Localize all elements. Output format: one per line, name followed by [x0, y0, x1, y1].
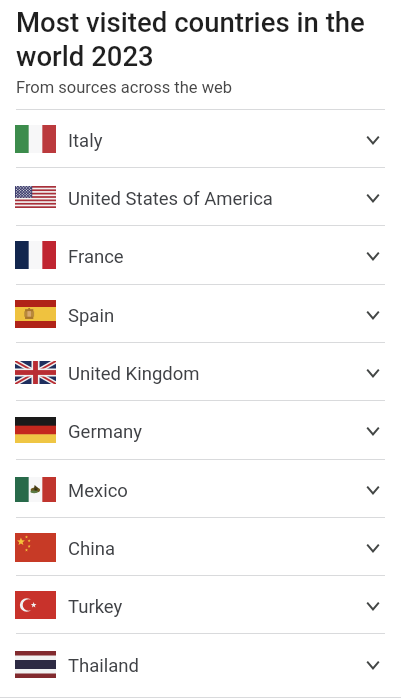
- staticText: Italy: [68, 130, 103, 152]
- button[interactable]: Turkey: [0, 576, 401, 634]
- staticText: Mexico: [68, 480, 128, 502]
- staticText: Thailand: [68, 655, 140, 677]
- staticText: France: [68, 246, 124, 268]
- button[interactable]: United States of America: [0, 168, 401, 226]
- button[interactable]: Thailand: [0, 635, 401, 693]
- button[interactable]: Italy: [0, 110, 401, 168]
- staticText: United Kingdom: [68, 363, 200, 385]
- staticText: Most visited countries in the world 2023: [16, 6, 368, 73]
- staticText: Spain: [68, 305, 115, 327]
- staticText: From sources across the web: [16, 78, 233, 97]
- staticText: Turkey: [68, 596, 123, 618]
- staticText: China: [68, 538, 116, 560]
- button[interactable]: Germany: [0, 401, 401, 459]
- button[interactable]: United Kingdom: [0, 343, 401, 401]
- button[interactable]: Mexico: [0, 460, 401, 518]
- staticText: Germany: [68, 421, 142, 443]
- staticText: United States of America: [68, 188, 273, 210]
- button[interactable]: France: [0, 226, 401, 284]
- button[interactable]: Spain: [0, 285, 401, 343]
- button[interactable]: China: [0, 518, 401, 576]
